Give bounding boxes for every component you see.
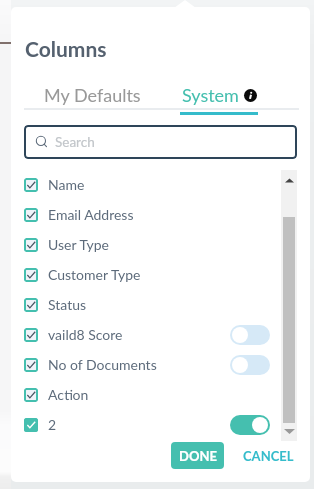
button[interactable]: Toggle off	[230, 325, 270, 345]
staticText: CANCEL	[243, 448, 294, 464]
staticText: User Type	[48, 236, 109, 253]
button[interactable]: System	[180, 80, 258, 115]
staticText: Customer Type	[48, 266, 141, 283]
staticText: Columns	[25, 36, 107, 61]
button[interactable]: My Defaults	[33, 80, 152, 110]
staticText: DONE	[179, 448, 217, 464]
button[interactable]: Email Address	[24, 200, 284, 230]
staticText: vaild8 Score	[48, 326, 123, 343]
staticText: Status	[48, 296, 87, 313]
button[interactable]: Toggle off	[230, 355, 270, 375]
button[interactable]: Scroll up	[281, 170, 297, 190]
staticText: Action	[48, 386, 89, 403]
other: Info	[244, 89, 257, 102]
button[interactable]: Name	[24, 170, 284, 200]
button[interactable]: Toggle on	[230, 415, 270, 435]
staticText: Search	[55, 134, 95, 150]
button[interactable]: Customer Type	[24, 260, 284, 290]
button[interactable]: vaild8 Score	[24, 320, 284, 350]
staticText: No of Documents	[48, 356, 157, 373]
staticText: Name	[48, 176, 85, 193]
staticText: System	[182, 84, 239, 106]
button[interactable]: Search	[24, 125, 297, 159]
button[interactable]: DONE	[171, 442, 224, 469]
button[interactable]: Status	[24, 290, 284, 320]
button[interactable]: Scroll down	[281, 421, 297, 441]
button[interactable]: User Type	[24, 230, 284, 260]
button[interactable]: Action	[24, 380, 284, 410]
staticText: Email Address	[48, 206, 134, 223]
staticText: My Defaults	[44, 84, 141, 106]
button[interactable]: No of Documents	[24, 350, 284, 380]
button[interactable]: CANCEL	[234, 442, 303, 469]
button[interactable]: 2	[24, 410, 284, 440]
staticText: 2	[48, 416, 57, 433]
